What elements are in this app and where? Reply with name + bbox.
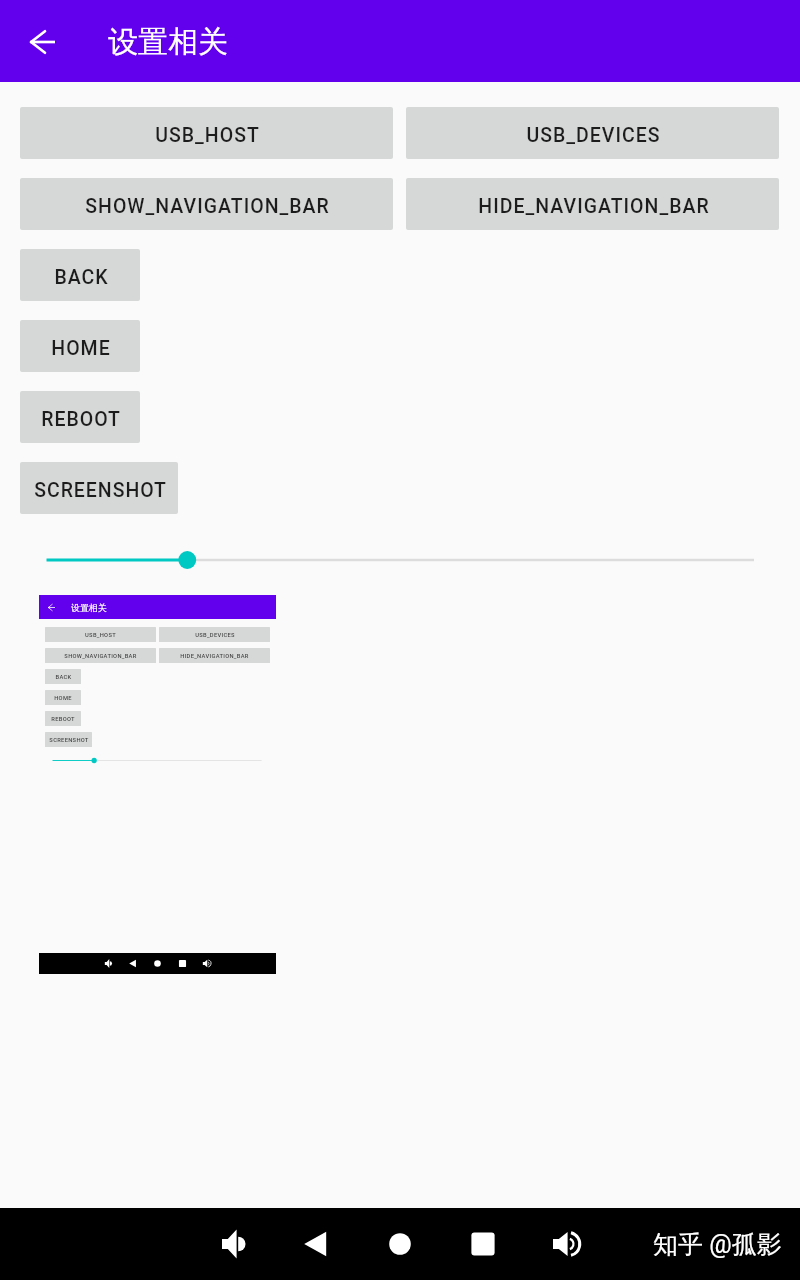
button[interactable]: BACK [45, 669, 81, 684]
button[interactable]: Back [297, 1226, 333, 1262]
button[interactable]: Volume up [201, 958, 212, 969]
button[interactable]: Home [382, 1226, 418, 1262]
staticText: HOME [51, 337, 111, 360]
button[interactable]: USB_HOST [45, 627, 156, 642]
button[interactable]: REBOOT [45, 711, 81, 726]
staticText: HIDE_NAVIGATION_BAR [180, 653, 249, 660]
staticText: BACK [55, 674, 72, 681]
button[interactable]: SHOW_NAVIGATION_BAR [20, 178, 393, 230]
button[interactable]: REBOOT [20, 391, 140, 443]
staticText: HOME [54, 695, 72, 702]
staticText: REBOOT [51, 716, 75, 723]
staticText: USB_DEVICES [526, 124, 661, 147]
staticText: USB_HOST [155, 124, 260, 147]
staticText: 设置相关 [108, 23, 228, 61]
button[interactable]: USB_HOST [20, 107, 393, 159]
button[interactable]: Home [152, 958, 163, 969]
button[interactable]: Volume up [547, 1226, 583, 1262]
button[interactable]: SCREENSHOT [45, 732, 92, 747]
button[interactable]: USB_DEVICES [159, 627, 270, 642]
staticText: USB_DEVICES [195, 632, 235, 639]
button[interactable]: SCREENSHOT [20, 462, 178, 514]
staticText: SHOW_NAVIGATION_BAR [64, 653, 137, 660]
staticText: HIDE_NAVIGATION_BAR [478, 195, 710, 218]
staticText: REBOOT [41, 408, 121, 431]
button[interactable]: HOME [20, 320, 140, 372]
button[interactable]: USB_DEVICES [406, 107, 779, 159]
staticText: 知乎 @孤影 [653, 1229, 782, 1260]
button[interactable]: Volume down [103, 958, 114, 969]
button[interactable]: Back [30, 30, 55, 54]
button[interactable]: Recents [465, 1226, 501, 1262]
button[interactable]: Back [127, 958, 138, 969]
button[interactable]: HOME [45, 690, 81, 705]
staticText: USB_HOST [85, 632, 116, 639]
button[interactable]: Back [48, 604, 55, 611]
button[interactable]: Recents [177, 958, 188, 969]
button[interactable]: Volume down [216, 1226, 252, 1262]
staticText: SHOW_NAVIGATION_BAR [85, 195, 330, 218]
button[interactable]: HIDE_NAVIGATION_BAR [159, 648, 270, 663]
staticText: SCREENSHOT [49, 737, 89, 744]
staticText: SCREENSHOT [34, 479, 167, 502]
button[interactable]: SHOW_NAVIGATION_BAR [45, 648, 156, 663]
staticText: 设置相关 [71, 602, 107, 613]
button[interactable]: HIDE_NAVIGATION_BAR [406, 178, 779, 230]
staticText: BACK [54, 266, 109, 289]
button[interactable]: BACK [20, 249, 140, 301]
